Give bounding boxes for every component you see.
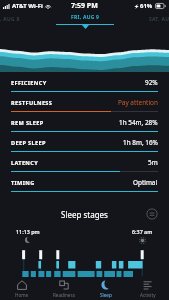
button[interactable]: EFFICIENCY — [0, 74, 169, 94]
button[interactable]: SAT, AUG 10 — [149, 14, 169, 24]
button[interactable]: REM SLEEP — [0, 114, 169, 134]
button[interactable]: Sleep stage info — [146, 208, 158, 220]
staticText: RESTFULNESS — [11, 99, 53, 107]
staticText: Activity — [140, 292, 156, 298]
staticText: TIMING — [11, 179, 35, 187]
button[interactable]: Home — [0, 280, 43, 298]
staticText: DEEP SLEEP — [11, 139, 46, 147]
staticText: SAT, AUG 10 — [149, 16, 169, 23]
button[interactable]: Sleep — [85, 280, 127, 298]
staticText: REM SLEEP — [11, 119, 44, 127]
staticText: Sleep — [100, 292, 112, 298]
button[interactable]: THU, AUG 8 — [0, 14, 20, 24]
staticText: LATENCY — [11, 159, 39, 167]
button[interactable]: TIMING — [0, 174, 169, 194]
staticText: 92% — [145, 78, 158, 87]
button[interactable]: LATENCY — [0, 154, 169, 174]
staticText: 5m — [148, 158, 158, 167]
staticText: Sleep stages — [61, 209, 108, 220]
staticText: 6:37 am — [132, 228, 153, 235]
staticText: 1h 54m, 28% — [119, 118, 158, 127]
button[interactable]: DEEP SLEEP — [0, 134, 169, 154]
button[interactable]: Readiness — [43, 280, 85, 298]
button[interactable]: Activity — [127, 280, 169, 298]
staticText: 11:13 pm — [16, 228, 40, 235]
button[interactable]: RESTFULNESS — [0, 94, 169, 114]
staticText: Home — [15, 292, 29, 298]
staticText: 7:59 PM — [71, 1, 98, 11]
staticText: THU, AUG 8 — [0, 16, 20, 23]
staticText: FRI, AUG 9 — [71, 14, 100, 21]
staticText: Readiness — [53, 292, 75, 298]
staticText: 1h 8m, 16% — [123, 138, 158, 147]
staticText: AT&T Wi-Fi — [12, 2, 43, 10]
staticText: Pay attention — [118, 98, 158, 107]
button[interactable]: FRI, AUG 9 — [56, 12, 114, 29]
staticText: Optimal — [133, 178, 158, 187]
staticText: EFFICIENCY — [11, 79, 47, 87]
staticText: 61% — [140, 2, 153, 10]
